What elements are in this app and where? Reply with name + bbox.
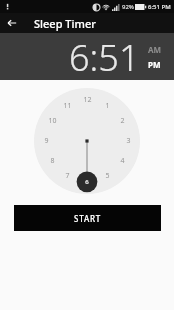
- button[interactable]: 6:51: [69, 33, 140, 80]
- staticText: 7: [65, 171, 70, 181]
- staticText: 6: [85, 178, 89, 186]
- staticText: 9: [44, 136, 49, 146]
- button[interactable]: PM: [148, 59, 161, 70]
- staticText: 11: [63, 101, 72, 111]
- button[interactable]: Hour picker: [34, 88, 140, 194]
- staticText: 10: [48, 116, 57, 126]
- staticText: 12: [83, 95, 92, 105]
- staticText: AM: [148, 44, 162, 55]
- staticText: 3: [126, 136, 131, 146]
- staticText: 5: [105, 171, 110, 181]
- staticText: 1: [105, 101, 110, 111]
- staticText: START: [74, 213, 102, 224]
- staticText: 2: [120, 116, 125, 126]
- staticText: 92%: [122, 3, 134, 11]
- button[interactable]: START: [14, 205, 161, 231]
- button[interactable]: Back: [4, 15, 20, 31]
- staticText: 8: [50, 156, 55, 166]
- staticText: PM: [148, 59, 161, 70]
- staticText: Sleep Timer: [34, 16, 96, 31]
- staticText: 4: [120, 156, 125, 166]
- button[interactable]: AM: [148, 44, 162, 55]
- staticText: 6:51 PM: [148, 3, 171, 11]
